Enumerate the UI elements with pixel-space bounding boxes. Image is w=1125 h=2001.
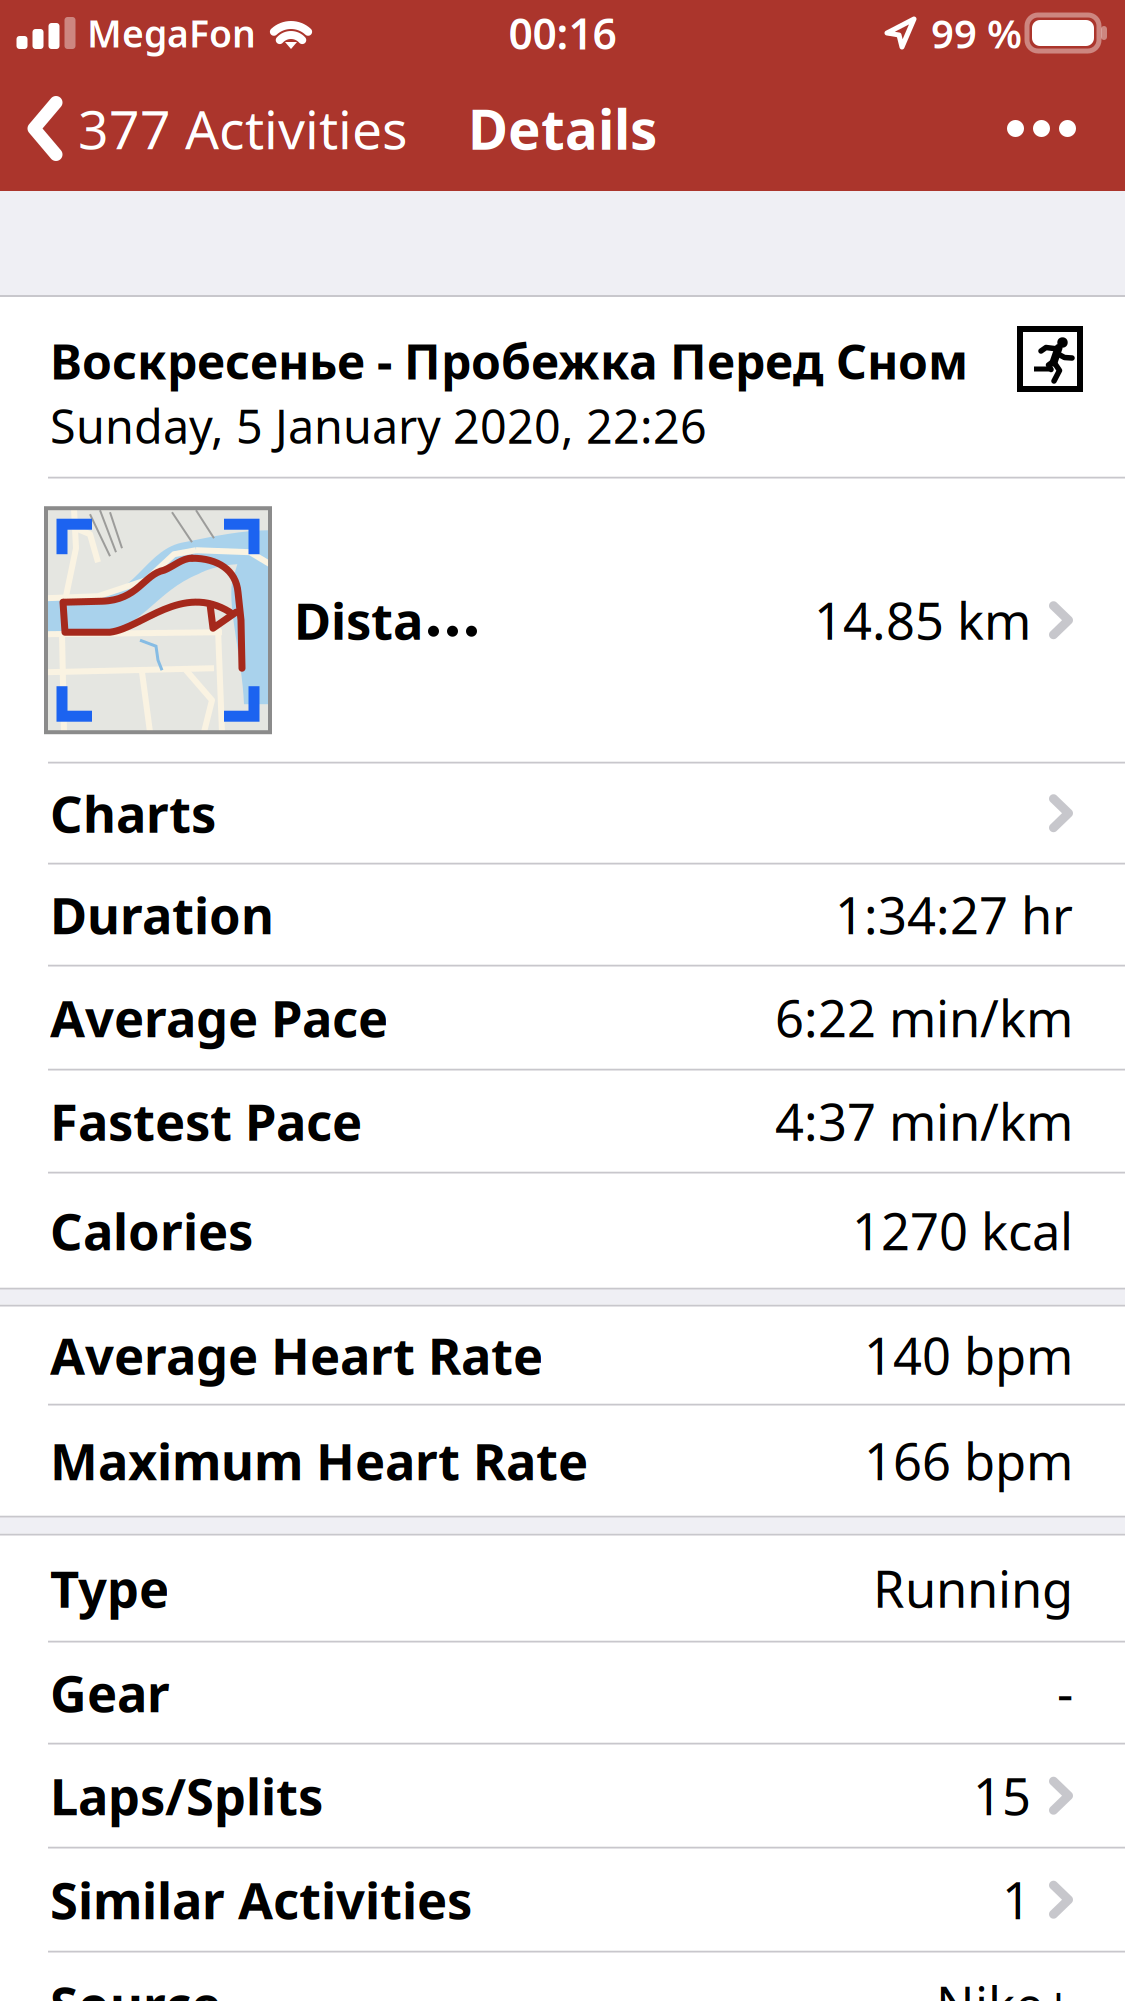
- staticText: 140 bpm: [864, 1322, 1073, 1389]
- button[interactable]: Duration: [0, 865, 1125, 965]
- button[interactable]: More options: [975, 90, 1125, 167]
- staticText: 377 Activities: [78, 93, 408, 164]
- staticText: Maximum Heart Rate: [50, 1427, 588, 1494]
- button[interactable]: Type: [0, 1536, 1125, 1641]
- button[interactable]: Dista: [0, 479, 1125, 762]
- staticText: 14.85 km: [814, 587, 1031, 654]
- button[interactable]: Source: [0, 1953, 1125, 2001]
- button[interactable]: Laps/Splits: [0, 1745, 1125, 1847]
- staticText: Source: [50, 1971, 221, 2001]
- button[interactable]: Similar Activities: [0, 1849, 1125, 1951]
- staticText: Similar Activities: [50, 1866, 472, 1933]
- button[interactable]: Gear: [0, 1643, 1125, 1743]
- button[interactable]: Calories: [0, 1174, 1125, 1288]
- button[interactable]: Fastest Pace: [0, 1071, 1125, 1172]
- staticText: Duration: [50, 881, 274, 948]
- staticText: Details: [468, 92, 657, 165]
- staticText: Running: [873, 1555, 1073, 1622]
- button[interactable]: Average Heart Rate: [0, 1307, 1125, 1404]
- staticText: 00:16: [508, 5, 616, 61]
- staticText: Calories: [50, 1197, 253, 1264]
- staticText: 4:37 min/km: [775, 1088, 1073, 1155]
- staticText: -: [1057, 1659, 1073, 1726]
- button[interactable]: Charts: [0, 764, 1125, 863]
- staticText: 1: [1002, 1866, 1031, 1933]
- button[interactable]: Average Pace: [0, 967, 1125, 1069]
- staticText: 15: [973, 1762, 1031, 1829]
- staticText: Sunday, 5 January 2020, 22:26: [50, 395, 707, 457]
- staticText: 1270 kcal: [852, 1197, 1073, 1264]
- button[interactable]: 377 Activities: [0, 79, 422, 178]
- staticText: Type: [50, 1555, 169, 1622]
- staticText: Dista: [294, 587, 423, 654]
- staticText: 6:22 min/km: [775, 984, 1073, 1051]
- staticText: Воскресенье - Пробежка Перед Сном: [50, 329, 968, 393]
- staticText: Average Pace: [50, 984, 388, 1051]
- staticText: MegaFon: [87, 8, 256, 58]
- staticText: 1:34:27 hr: [835, 881, 1073, 948]
- staticText: Laps/Splits: [50, 1762, 323, 1829]
- staticText: Average Heart Rate: [50, 1322, 543, 1389]
- staticText: Nike+: [936, 1971, 1073, 2001]
- staticText: Gear: [50, 1659, 170, 1726]
- staticText: 99 %: [931, 6, 1022, 59]
- staticText: Charts: [50, 780, 216, 847]
- button[interactable]: Maximum Heart Rate: [0, 1406, 1125, 1516]
- staticText: Fastest Pace: [50, 1088, 362, 1155]
- staticText: 166 bpm: [864, 1427, 1073, 1494]
